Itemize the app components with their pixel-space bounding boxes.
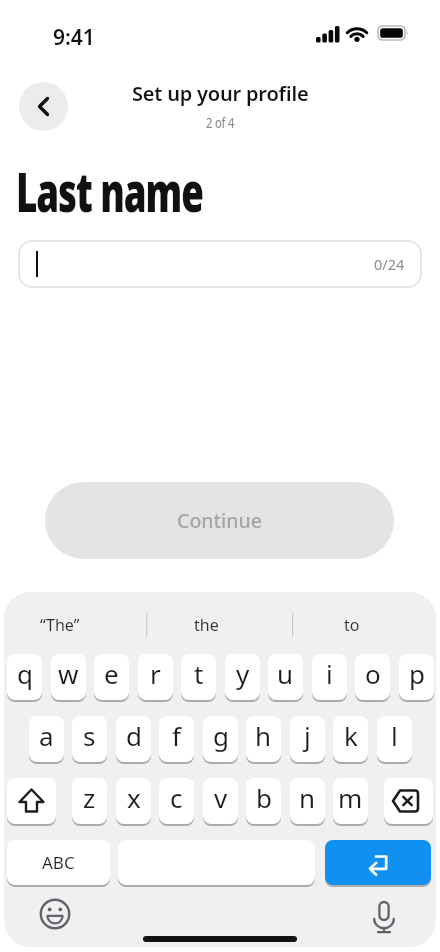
staticText: g [213,718,229,753]
button[interactable]: e [94,654,129,700]
button[interactable]: b [246,778,281,824]
staticText: j [304,718,311,753]
button[interactable]: w [51,654,86,700]
button[interactable]: p [399,654,434,700]
staticText: b [256,780,272,815]
staticText: p [409,656,425,691]
button[interactable]: y [225,654,260,700]
button[interactable]: i [312,654,347,700]
button[interactable]: j [290,716,325,762]
button[interactable]: m [333,778,368,824]
button[interactable]: f [159,716,194,762]
staticText: q [17,656,33,691]
staticText: Set up your profile [132,80,309,107]
staticText: k [344,718,358,753]
button[interactable]: “The” [10,612,110,638]
staticText: t [194,656,204,691]
button[interactable]: o [355,654,390,700]
button[interactable]: h [246,716,281,762]
staticText: 2 of 4 [206,112,235,132]
button[interactable]: ABC [7,840,110,885]
staticText: 0/24 [374,254,405,274]
button[interactable]: 0/24 [18,240,422,288]
button[interactable]: r [138,654,173,700]
staticText: i [326,656,333,691]
staticText: l [391,718,398,753]
staticText: m [338,780,363,815]
button[interactable]: d [116,716,151,762]
button[interactable] [362,893,406,937]
staticText: h [255,718,272,753]
button[interactable]: v [203,778,238,824]
staticText: f [172,718,181,753]
button[interactable] [384,778,433,824]
staticText: z [83,780,96,815]
staticText: n [299,780,316,815]
button[interactable]: n [290,778,325,824]
staticText: a [39,718,54,753]
staticText: d [126,718,142,753]
staticText: ABC [42,851,75,874]
staticText: o [365,656,381,691]
staticText: v [214,780,228,815]
staticText: “The” [40,614,80,636]
staticText: u [277,656,294,691]
button[interactable]: Continue [45,482,394,559]
staticText: the [194,614,219,636]
button[interactable]: c [159,778,194,824]
button[interactable]: to [302,612,402,638]
button[interactable]: z [72,778,107,824]
staticText: s [83,718,96,753]
staticText: 9:41 [53,23,95,52]
button[interactable]: u [268,654,303,700]
staticText: Continue [177,507,262,534]
button[interactable]: the [156,612,256,638]
button[interactable] [7,778,56,824]
staticText: r [150,656,161,691]
button[interactable] [118,840,315,885]
button[interactable]: s [72,716,107,762]
button[interactable]: x [116,778,151,824]
button[interactable]: k [333,716,368,762]
button[interactable]: q [7,654,42,700]
button[interactable]: t [181,654,216,700]
staticText: Last name [16,154,203,229]
button[interactable]: a [29,716,64,762]
staticText: x [127,780,141,815]
button[interactable] [33,891,77,935]
staticText: e [104,656,119,691]
button[interactable]: g [203,716,238,762]
staticText: to [344,614,360,636]
button[interactable] [325,840,431,885]
staticText: y [236,656,250,691]
button[interactable]: l [377,716,412,762]
staticText: w [58,656,79,691]
staticText: c [170,780,183,815]
button[interactable] [19,82,68,131]
